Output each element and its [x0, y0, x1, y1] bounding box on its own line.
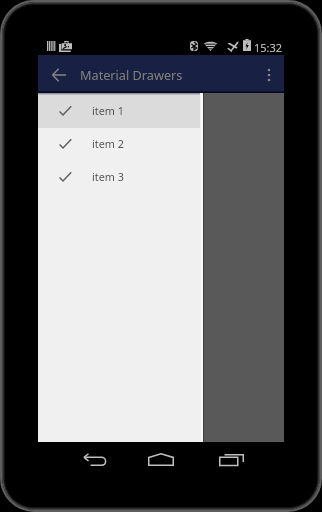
button[interactable]: More options — [256, 62, 282, 88]
staticText: item 3 — [92, 169, 124, 184]
button[interactable]: Recent apps — [207, 442, 255, 482]
staticText: item 1 — [92, 103, 124, 118]
button[interactable]: item 2 — [38, 128, 203, 161]
button[interactable]: Navigate up — [46, 62, 72, 88]
button[interactable]: item 1 — [38, 95, 203, 128]
button[interactable]: Back — [69, 442, 117, 482]
button[interactable]: Home — [137, 442, 185, 482]
staticText: item 2 — [92, 136, 124, 151]
staticText: 15:32 — [254, 40, 283, 55]
staticText: Material Drawers — [80, 66, 183, 83]
button[interactable]: item 3 — [38, 161, 203, 194]
